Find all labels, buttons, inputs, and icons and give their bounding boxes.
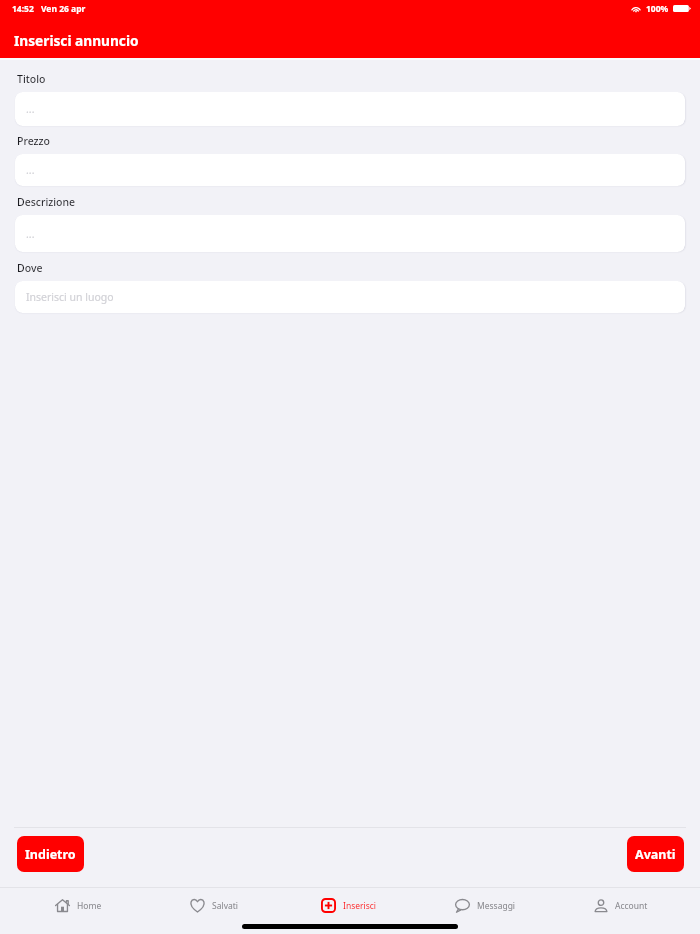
staticText: Account (615, 900, 648, 912)
button[interactable]: Home (11, 888, 146, 923)
staticText: Salvati (212, 900, 238, 912)
staticText: ... (26, 102, 35, 116)
staticText: Indietro (25, 846, 76, 863)
staticText: Prezzo (17, 134, 50, 148)
staticText: 14:52 (12, 3, 34, 15)
staticText: Inserisci annuncio (14, 31, 139, 50)
button[interactable]: Avanti (627, 836, 684, 872)
staticText: Titolo (17, 72, 46, 86)
staticText: ... (26, 163, 35, 177)
staticText: Inserisci un luogo (26, 290, 114, 304)
staticText: Ven 26 apr (41, 3, 86, 15)
staticText: Inserisci (343, 900, 377, 912)
staticText: Dove (17, 261, 43, 275)
staticText: Messaggi (477, 900, 516, 912)
button[interactable]: Messaggi (417, 888, 553, 923)
staticText: 100% (646, 3, 669, 15)
button[interactable]: Inserisci un luogo (15, 281, 685, 313)
staticText: ... (26, 227, 35, 241)
button[interactable]: Account (553, 888, 689, 923)
button[interactable]: Inserisci (281, 888, 417, 923)
staticText: Avanti (635, 846, 676, 863)
button[interactable]: Salvati (146, 888, 281, 923)
button[interactable]: Indietro (17, 836, 84, 872)
staticText: Descrizione (17, 195, 76, 209)
staticText: Home (77, 900, 102, 912)
